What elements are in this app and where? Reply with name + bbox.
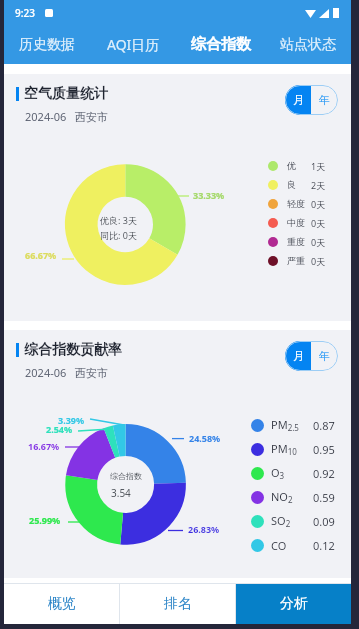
staticText: 重度 <box>287 236 311 247</box>
staticText: 严重 <box>287 255 311 266</box>
staticText: 16.67% <box>28 440 60 452</box>
staticText: 2天 <box>311 179 326 191</box>
button[interactable]: 年 <box>311 341 338 371</box>
staticText: 综合指数 <box>191 35 251 54</box>
staticText: 0天 <box>311 255 326 267</box>
staticText: 2.54% <box>46 423 73 435</box>
other: App notification <box>45 9 53 17</box>
other: Wi-Fi <box>305 9 316 18</box>
staticText: 轻度 <box>287 198 311 209</box>
staticText: 同比: 0天 <box>100 229 137 241</box>
staticText: 分析 <box>280 595 308 613</box>
staticText: 站点状态 <box>280 36 336 54</box>
staticText: 0.92 <box>313 466 335 481</box>
staticText: 0.12 <box>313 538 335 553</box>
other: Signal <box>319 9 329 18</box>
staticText: 3.54 <box>111 486 131 500</box>
staticText: 25.99% <box>29 514 61 526</box>
staticText: 空气质量统计 <box>24 85 108 103</box>
button[interactable]: 分析 <box>236 584 351 624</box>
staticText: 2024-06 西安市 <box>25 365 108 380</box>
staticText: 2024-06 西安市 <box>25 109 108 124</box>
staticText: 排名 <box>164 595 192 613</box>
staticText: 26.83% <box>188 523 220 535</box>
staticText: 0.59 <box>313 490 335 505</box>
staticText: AQI日历 <box>107 35 160 54</box>
staticText: 1天 <box>311 160 326 172</box>
staticText: 66.67% <box>25 249 57 261</box>
button[interactable]: 年 <box>311 85 338 115</box>
staticText: 年 <box>319 349 330 363</box>
staticText: PM10 <box>271 441 313 458</box>
staticText: 0.95 <box>313 442 335 457</box>
button[interactable]: 概览 <box>4 584 119 624</box>
staticText: 年 <box>319 93 330 107</box>
staticText: 优 <box>287 160 311 171</box>
button[interactable]: 站点状态 <box>264 25 351 64</box>
staticText: 综合指数贡献率 <box>24 341 122 359</box>
staticText: 0.87 <box>313 418 335 433</box>
button[interactable]: 月 <box>285 341 311 371</box>
button[interactable]: 月 <box>285 85 311 115</box>
staticText: 0.09 <box>313 514 335 529</box>
staticText: 历史数据 <box>19 36 75 54</box>
staticText: PM2.5 <box>271 417 313 434</box>
staticText: 月 <box>293 349 304 363</box>
staticText: 0天 <box>311 198 326 210</box>
staticText: SO2 <box>271 513 313 530</box>
staticText: 33.33% <box>193 189 225 201</box>
staticText: 优良: 3天 <box>100 214 137 226</box>
staticText: 24.58% <box>189 432 221 444</box>
staticText: 概览 <box>48 595 76 613</box>
button[interactable]: 排名 <box>120 584 235 624</box>
staticText: 0天 <box>311 236 326 248</box>
button[interactable]: AQI日历 <box>90 25 177 64</box>
staticText: 中度 <box>287 217 311 228</box>
button[interactable]: 历史数据 <box>4 25 90 64</box>
staticText: 综合指数 <box>110 471 142 481</box>
staticText: 良 <box>287 179 311 190</box>
staticText: NO2 <box>271 489 313 506</box>
staticText: O3 <box>271 465 313 482</box>
staticText: 9:23 <box>15 6 35 20</box>
staticText: CO <box>271 538 313 553</box>
staticText: 月 <box>293 93 304 107</box>
staticText: 0天 <box>311 217 326 229</box>
button[interactable]: 综合指数 <box>177 25 264 64</box>
staticText: 3.39% <box>58 414 85 426</box>
